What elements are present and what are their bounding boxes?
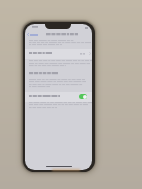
- button[interactable]: Back: [27, 33, 38, 36]
- button[interactable]: [25, 49, 92, 59]
- button[interactable]: [25, 92, 92, 102]
